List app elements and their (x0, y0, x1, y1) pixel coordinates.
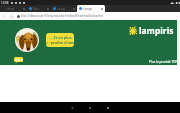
staticText: lampiris (139, 25, 174, 37)
button[interactable]: Back (2, 13, 6, 20)
staticText: Plus le produit TOP (149, 60, 178, 64)
button[interactable]: Back (63, 102, 81, 113)
button[interactable]: Lampiris - Mon esp (51, 5, 77, 12)
staticText: 12:08 (1, 1, 9, 5)
button[interactable]: Mon contrat - La (27, 5, 51, 12)
staticText: Mon contrat - La (33, 7, 40, 11)
staticText: Lampiris - Mon (6, 7, 14, 11)
staticText: Lampiris - Mon c (83, 7, 92, 11)
staticText: Lampiris - Mon esp (57, 7, 65, 11)
button[interactable]: Reload (9, 13, 14, 20)
staticText: ... Et en plus je profite d'une (46, 35, 74, 45)
button[interactable]: Lampiris - Mon (4, 5, 27, 12)
button[interactable]: Lampiris - Mon c (77, 5, 105, 12)
staticText: file:///data/user/0/org.mozilla.firefox/… (21, 14, 129, 18)
button[interactable]: Home (81, 102, 99, 113)
button[interactable]: Recent apps (99, 102, 117, 113)
